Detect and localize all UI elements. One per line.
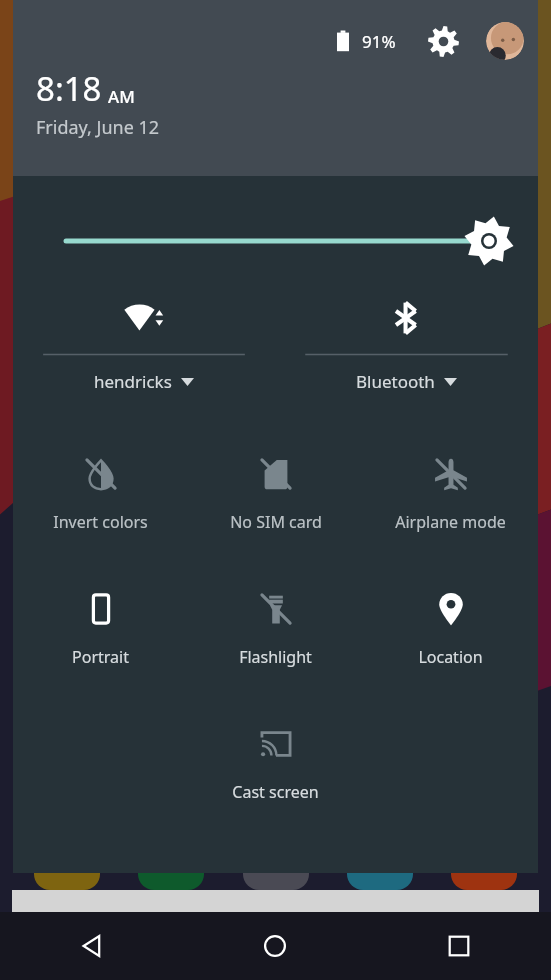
button[interactable]: Settings: [422, 20, 464, 62]
button[interactable]: Airplane mode: [363, 433, 538, 568]
button[interactable]: Location: [363, 568, 538, 703]
staticText: hendricks: [94, 370, 172, 393]
staticText: 8:18: [36, 66, 102, 111]
button[interactable]: User profile: [486, 22, 524, 60]
button[interactable]: Invert colors: [13, 433, 188, 568]
button[interactable]: Wi-Fi hendricks: [13, 276, 275, 421]
button[interactable]: No SIM card: [188, 433, 363, 568]
staticText: AM: [108, 85, 135, 108]
button[interactable]: Flashlight: [188, 568, 363, 703]
staticText: Airplane mode: [395, 511, 506, 533]
button[interactable]: Cast screen: [188, 703, 363, 838]
button[interactable]: Recents: [367, 912, 551, 980]
staticText: No SIM card: [230, 511, 322, 533]
button[interactable]: Bluetooth: [275, 276, 538, 421]
staticText: Portrait: [72, 646, 129, 668]
staticText: Invert colors: [53, 511, 148, 533]
staticText: 91%: [362, 30, 396, 53]
staticText: Flashlight: [239, 646, 312, 668]
button[interactable]: Brightness: [13, 176, 538, 276]
staticText: Location: [418, 646, 483, 668]
button[interactable]: Portrait: [13, 568, 188, 703]
staticText: Friday, June 12: [36, 115, 160, 140]
button[interactable]: Battery 91 percent: [326, 24, 360, 58]
button[interactable]: Home: [183, 912, 367, 980]
staticText: Cast screen: [232, 781, 319, 803]
button[interactable]: Back: [0, 912, 183, 980]
staticText: Bluetooth: [356, 370, 435, 393]
